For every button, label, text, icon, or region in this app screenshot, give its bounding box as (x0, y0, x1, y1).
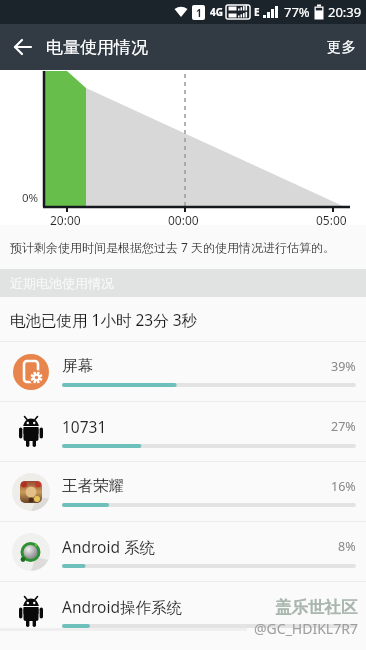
staticText: 电量使用情况 (46, 37, 148, 58)
button[interactable]: 屏幕 (0, 342, 366, 401)
staticText: 王者荣耀 (62, 476, 124, 496)
button[interactable] (0, 24, 46, 70)
button[interactable]: Android操作系统 (0, 582, 366, 641)
staticText: Android操作系统 (62, 596, 183, 617)
staticText: 20:00 (50, 212, 81, 228)
staticText: 8% (338, 538, 356, 555)
staticText: 屏幕 (62, 356, 93, 376)
staticText: 27% (331, 418, 356, 435)
button[interactable]: 10731 (0, 402, 366, 461)
staticText: 1 (196, 6, 202, 20)
button[interactable]: 王者荣耀 (0, 462, 366, 521)
staticText: 预计剩余使用时间是根据您过去 7 天的使用情况进行估算的。 (10, 239, 336, 255)
staticText: 16% (331, 478, 356, 495)
staticText: 盖乐世社区 (275, 597, 358, 618)
staticText: 77% (284, 3, 310, 21)
staticText: 近期电池使用情况 (10, 275, 114, 291)
staticText: 20:39 (328, 3, 362, 21)
staticText: E (254, 5, 260, 19)
staticText: 电池已使用 1小时 23分 3秒 (10, 309, 198, 330)
staticText: 05:00 (316, 212, 347, 228)
button[interactable]: 更多 (317, 24, 366, 70)
staticText: 更多 (327, 38, 356, 56)
staticText: @GC_HDIKL7R7 (254, 619, 358, 638)
staticText: Android 系统 (62, 536, 156, 557)
staticText: 10731 (62, 416, 107, 437)
staticText: 00:00 (168, 212, 199, 228)
staticText: 0% (22, 190, 39, 206)
staticText: 39% (331, 358, 356, 375)
button[interactable]: Android 系统 (0, 522, 366, 581)
staticText: 4G (210, 5, 223, 19)
